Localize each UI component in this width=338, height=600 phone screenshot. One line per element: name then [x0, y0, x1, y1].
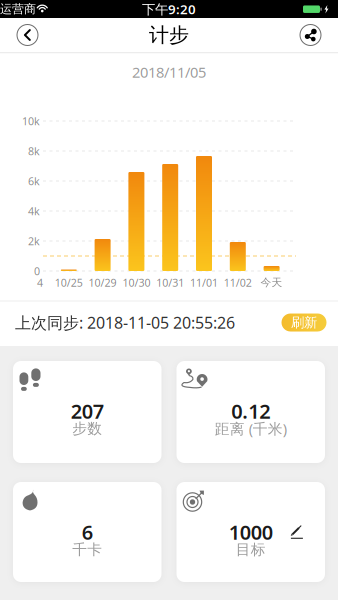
- staticText: 6: [82, 519, 93, 545]
- staticText: 10/29: [89, 275, 117, 290]
- staticText: 今天: [261, 276, 283, 289]
- staticText: 0.12: [231, 398, 270, 424]
- button[interactable]: 返回: [14, 21, 41, 48]
- staticText: 1000: [229, 519, 273, 545]
- staticText: 下午9:20: [142, 0, 196, 18]
- staticText: 步数: [72, 419, 102, 437]
- staticText: 刷新: [291, 314, 317, 331]
- staticText: 4k: [28, 204, 40, 218]
- staticText: 上次同步: 2018-11-05 20:55:26: [15, 312, 235, 333]
- staticText: 计步: [149, 23, 189, 47]
- staticText: 4: [37, 275, 43, 290]
- staticText: 2k: [28, 234, 40, 248]
- staticText: 8k: [28, 144, 40, 158]
- button[interactable]: 刷新: [281, 313, 326, 331]
- button[interactable]: 编辑目标: [288, 521, 306, 539]
- staticText: 207: [71, 398, 104, 424]
- staticText: 2018/11/05: [132, 62, 206, 82]
- staticText: 目标: [236, 540, 266, 558]
- staticText: 11/02: [224, 275, 252, 290]
- staticText: 运营商: [0, 2, 36, 16]
- staticText: 千卡: [72, 540, 102, 558]
- staticText: 10k: [22, 114, 40, 128]
- staticText: 距离 (千米): [215, 419, 287, 438]
- staticText: 6k: [28, 174, 40, 188]
- staticText: 10/30: [122, 275, 150, 290]
- staticText: 0: [34, 264, 40, 278]
- button[interactable]: 分享: [297, 21, 324, 48]
- staticText: 11/01: [190, 275, 218, 290]
- staticText: 10/31: [156, 275, 184, 290]
- staticText: 10/25: [55, 275, 83, 290]
